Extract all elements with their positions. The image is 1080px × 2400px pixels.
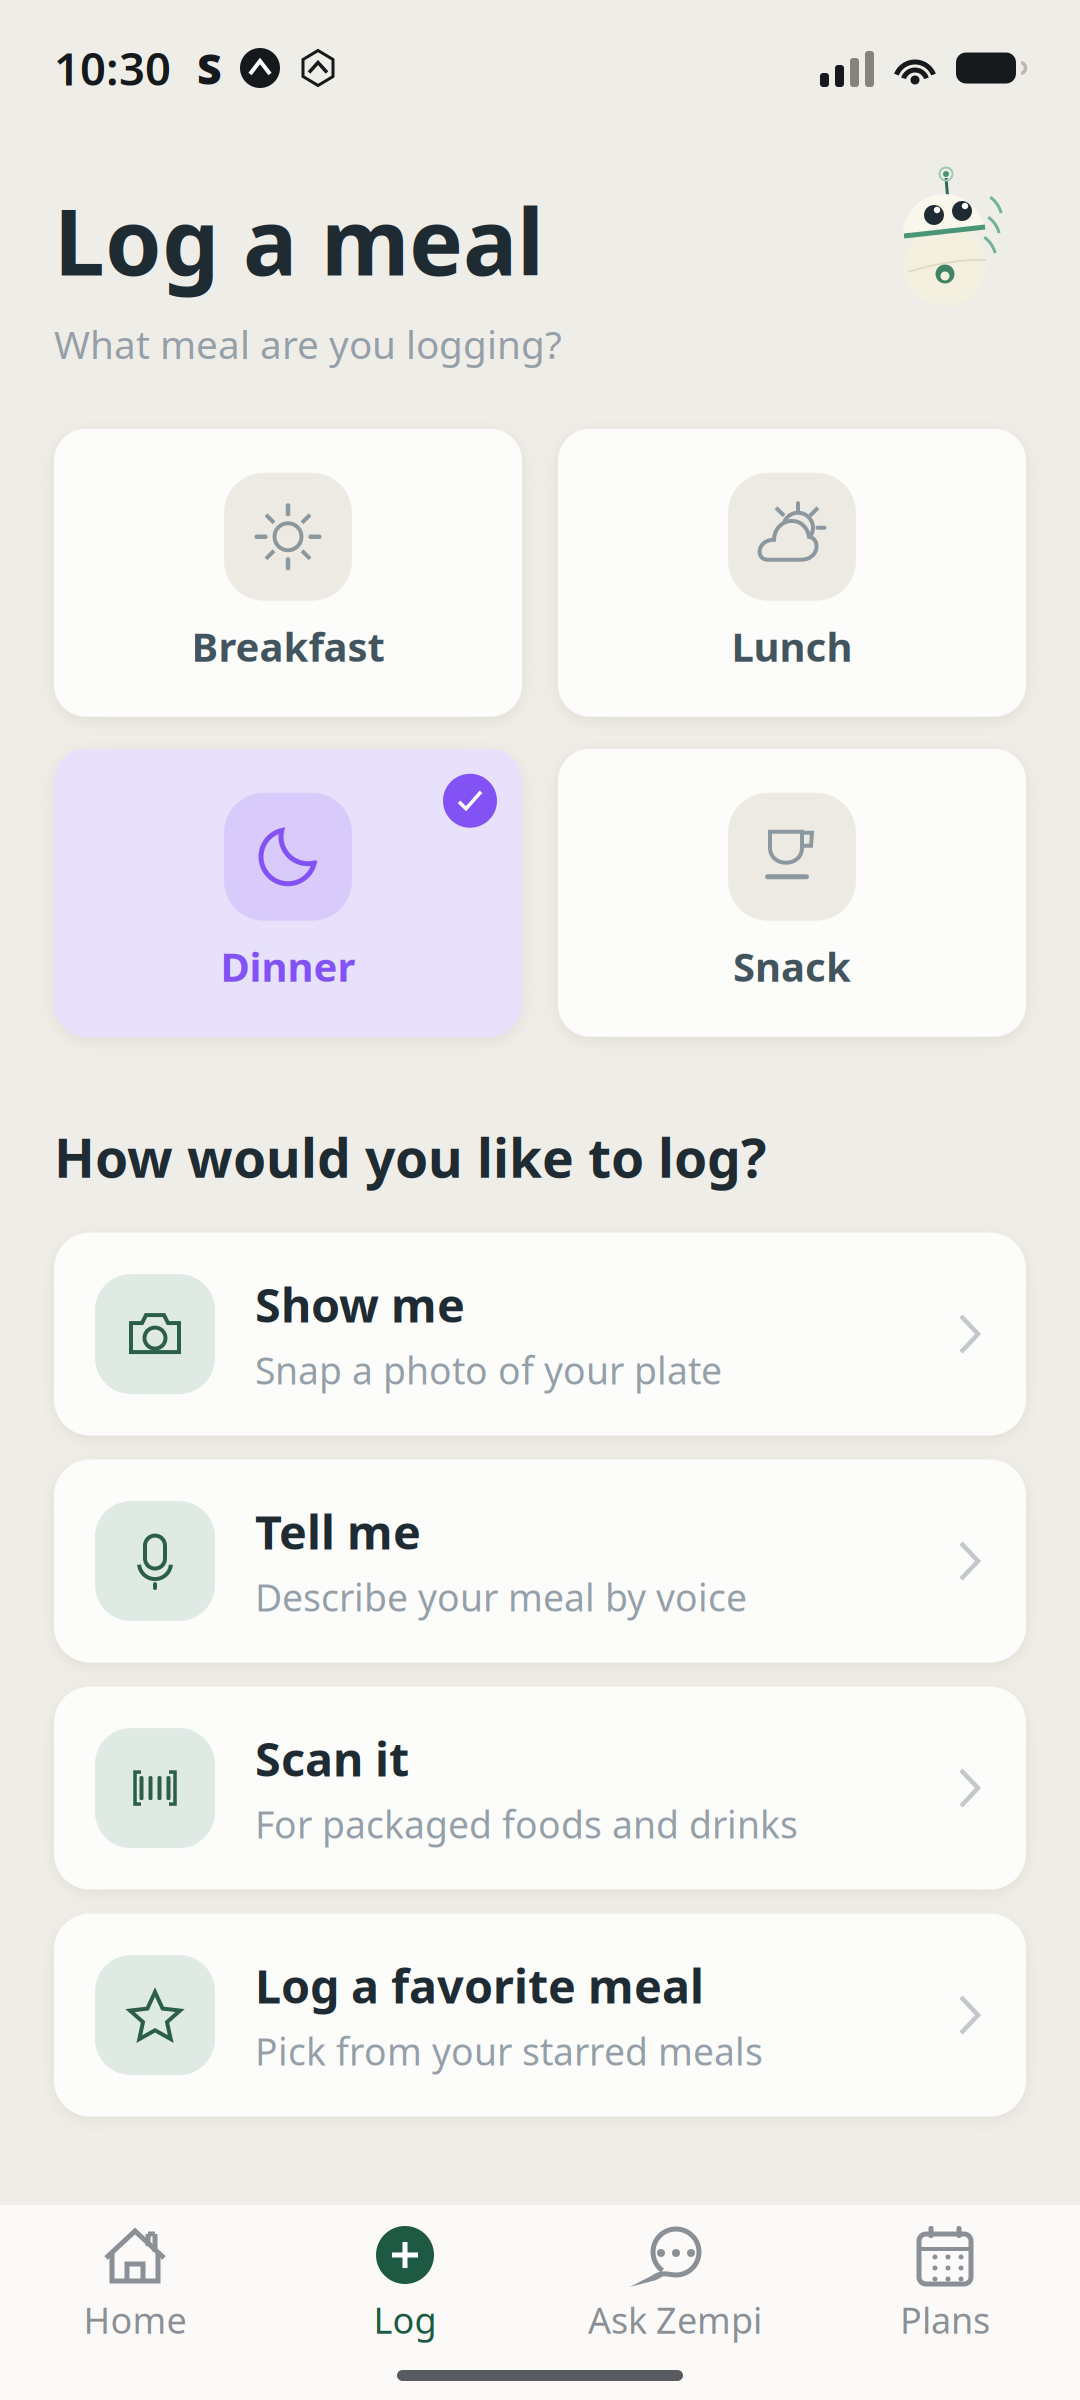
button[interactable]: Ask Zempi [540,2220,810,2350]
button[interactable]: Home [0,2220,270,2350]
button[interactable]: Log a favorite meal [54,1914,1026,2117]
staticText: Pick from your starred meals [255,2026,763,2076]
staticText: Log a favorite meal [255,1954,704,2016]
button[interactable]: Breakfast [54,429,522,717]
staticText: S [197,40,222,96]
staticText: Log a meal [54,180,544,300]
button[interactable]: Tell me [54,1460,1026,1663]
staticText: Log [373,2296,436,2344]
staticText: Ask Zempi [588,2296,762,2344]
button[interactable]: Dinner [54,749,522,1037]
button[interactable]: Snack [558,749,1026,1037]
staticText: Dinner [220,940,355,993]
staticText: Snap a photo of your plate [255,1345,722,1395]
staticText: Plans [900,2296,990,2344]
button[interactable]: Scan it [54,1687,1026,1890]
staticText: Snack [733,940,851,993]
staticText: Home [83,2296,186,2344]
staticText: Lunch [731,620,852,673]
staticText: 10:30 [54,38,171,98]
staticText: What meal are you logging? [54,318,562,370]
button[interactable]: Lunch [558,429,1026,717]
staticText: Scan it [255,1727,409,1789]
staticText: For packaged foods and drinks [255,1799,798,1849]
staticText: Describe your meal by voice [255,1572,747,1622]
button[interactable]: Show me [54,1233,1026,1436]
button[interactable]: Plans [810,2220,1080,2350]
staticText: Tell me [255,1500,421,1562]
staticText: Breakfast [191,620,384,673]
button[interactable]: Log [270,2220,540,2350]
staticText: How would you like to log? [54,1122,766,1192]
staticText: Show me [255,1273,465,1335]
